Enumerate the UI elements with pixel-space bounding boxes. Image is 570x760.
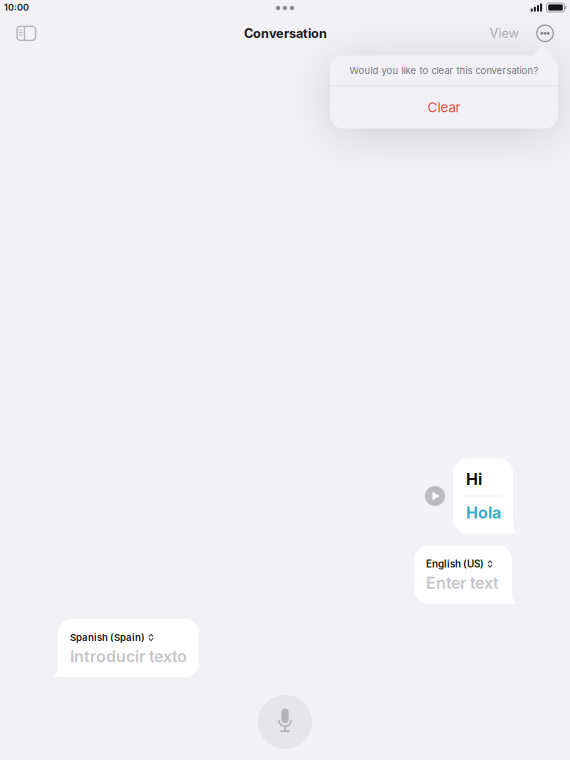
staticText: Spanish (Spain): [70, 632, 145, 643]
staticText: View: [489, 25, 518, 41]
staticText: Hola: [466, 503, 501, 522]
staticText: Hi: [466, 470, 482, 489]
button[interactable]: Play: [425, 486, 445, 506]
staticText: Enter text: [426, 573, 499, 592]
staticText: Clear: [427, 99, 460, 115]
staticText: Would you like to clear this conversatio…: [349, 65, 538, 76]
staticText: English (US): [426, 558, 484, 570]
staticText: Conversation: [244, 26, 327, 41]
button[interactable]: Record: [258, 695, 312, 749]
button[interactable]: More: [529, 17, 561, 49]
button[interactable]: Clear: [330, 86, 558, 128]
staticText: Introducir texto: [70, 647, 187, 666]
button[interactable]: Show Sidebar: [8, 17, 45, 49]
staticText: 10:00: [4, 2, 29, 13]
button[interactable]: View: [482, 18, 525, 48]
